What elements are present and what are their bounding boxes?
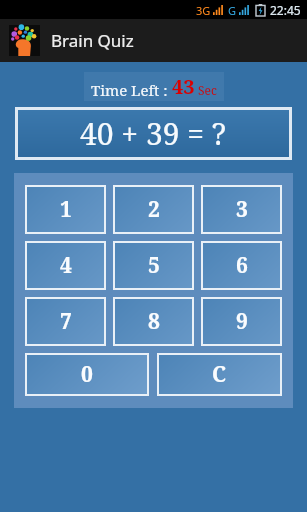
button[interactable]: 3	[203, 187, 280, 232]
staticText: 2	[148, 195, 160, 224]
staticText: 40 + 39 = ?	[80, 113, 227, 154]
staticText: 3	[236, 195, 248, 224]
button[interactable]: C	[159, 355, 280, 394]
staticText: 22:45	[270, 2, 301, 18]
button[interactable]: 1	[27, 187, 104, 232]
staticText: 0	[81, 360, 93, 389]
staticText: Brain Quiz	[51, 29, 134, 52]
button[interactable]: 4	[27, 243, 104, 288]
staticText: 3G	[196, 3, 211, 18]
staticText: 4	[60, 251, 72, 280]
staticText: 1	[60, 195, 72, 224]
staticText: 43	[172, 73, 195, 100]
staticText: G	[228, 3, 237, 18]
staticText: 7	[60, 307, 72, 336]
button[interactable]: 5	[115, 243, 192, 288]
staticText: 8	[148, 307, 160, 336]
button[interactable]: 8	[115, 299, 192, 344]
button[interactable]: 9	[203, 299, 280, 344]
staticText: 5	[148, 251, 160, 280]
staticText: 9	[236, 307, 248, 336]
other: Brain Quiz icon	[9, 25, 40, 56]
button[interactable]: 2	[115, 187, 192, 232]
button[interactable]: 7	[27, 299, 104, 344]
staticText: C	[212, 360, 227, 389]
staticText: Time Left :	[91, 80, 172, 100]
staticText: Sec	[198, 82, 217, 98]
staticText: 6	[236, 251, 248, 280]
button[interactable]: 0	[27, 355, 147, 394]
button[interactable]: 6	[203, 243, 280, 288]
